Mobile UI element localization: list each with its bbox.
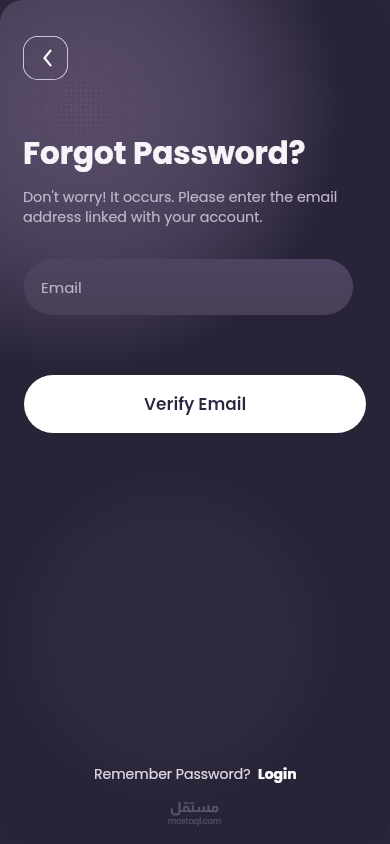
button[interactable]: Email: [24, 259, 353, 315]
staticText: Email: [41, 277, 82, 298]
button[interactable]: Back: [23, 36, 68, 80]
staticText: Login: [258, 764, 297, 784]
button[interactable]: Login: [258, 764, 297, 784]
button[interactable]: Verify Email: [24, 375, 366, 433]
staticText: mostaql.com: [168, 816, 222, 827]
staticText: Verify Email: [144, 392, 247, 416]
staticText: Don't worry! It occurs. Please enter the…: [23, 187, 338, 227]
staticText: Remember Password?: [94, 764, 251, 784]
staticText: مستقل: [170, 799, 220, 815]
staticText: Forgot Password?: [23, 131, 306, 174]
